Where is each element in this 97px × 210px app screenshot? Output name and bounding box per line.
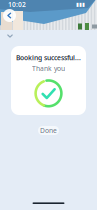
staticText: Thank you xyxy=(32,64,65,73)
button[interactable]: Done xyxy=(38,126,59,135)
button[interactable]: Back xyxy=(3,9,16,22)
staticText: Booking successful... xyxy=(16,53,81,62)
staticText: ▮▮▮ xyxy=(76,1,89,8)
staticText: Done xyxy=(40,126,57,135)
staticText: 10:02 xyxy=(8,0,26,9)
button[interactable]: Collapse xyxy=(5,32,15,40)
